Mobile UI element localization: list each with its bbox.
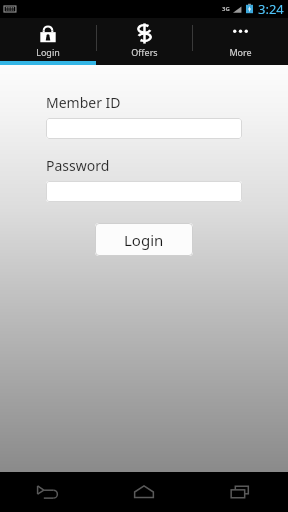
button[interactable]: Home (96, 472, 192, 512)
button[interactable]: Back (0, 472, 96, 512)
staticText: Login (124, 230, 164, 250)
button[interactable] (46, 118, 242, 139)
other: Offers (133, 22, 156, 45)
button[interactable]: Recent apps (192, 472, 288, 512)
other: Login (37, 22, 59, 45)
staticText: More (229, 46, 252, 58)
other: More (229, 22, 252, 45)
staticText: Password (46, 156, 110, 175)
staticText: Offers (131, 46, 158, 58)
staticText: 3:24 (258, 0, 284, 18)
button[interactable]: Login (0, 18, 96, 65)
button[interactable]: More (192, 18, 288, 65)
staticText: Login (36, 46, 60, 58)
button[interactable]: Login (95, 223, 193, 256)
button[interactable]: Offers (96, 18, 192, 65)
staticText: 3G (222, 5, 230, 13)
button[interactable] (46, 181, 242, 202)
staticText: Member ID (46, 93, 121, 112)
